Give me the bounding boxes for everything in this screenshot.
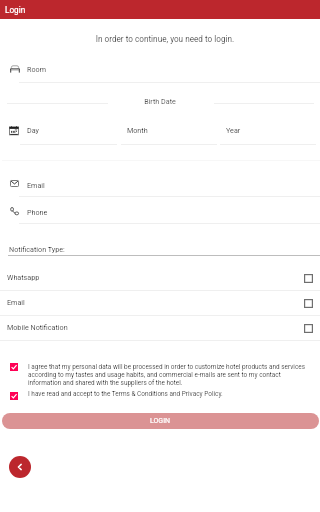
button[interactable]: LOGIN <box>2 413 319 429</box>
staticText: Email <box>27 181 45 189</box>
staticText: I agree that my personal data will be pr… <box>28 363 313 387</box>
button[interactable]: I agree that my personal data will be pr… <box>0 359 320 387</box>
button[interactable]: Email <box>0 175 320 197</box>
button[interactable]: Year <box>226 126 241 134</box>
staticText: Email <box>7 298 25 306</box>
button[interactable]: Day <box>27 126 39 134</box>
button[interactable]: I have read and accept to the Terms & Co… <box>0 388 320 402</box>
staticText: Birth Date <box>0 97 320 105</box>
staticText: Login <box>5 5 26 15</box>
button[interactable]: Login <box>0 0 320 19</box>
button[interactable]: Whatsapp <box>0 265 320 290</box>
staticText: Whatsapp <box>7 273 40 281</box>
staticText: Room <box>27 65 46 73</box>
button[interactable]: Month <box>127 126 148 134</box>
staticText: In order to continue, you need to login. <box>10 34 320 44</box>
staticText: I have read and accept to the Terms & Co… <box>28 390 223 398</box>
button[interactable]: Room <box>0 60 320 83</box>
staticText: Mobile Notification <box>7 323 68 331</box>
button[interactable]: Phone <box>0 202 320 224</box>
button[interactable]: Mobile Notification <box>0 315 320 340</box>
button[interactable]: Back <box>9 456 31 478</box>
staticText: LOGIN <box>150 417 171 425</box>
staticText: Phone <box>27 208 48 216</box>
staticText: Notification Type: <box>9 245 65 253</box>
button[interactable]: Email <box>0 290 320 315</box>
